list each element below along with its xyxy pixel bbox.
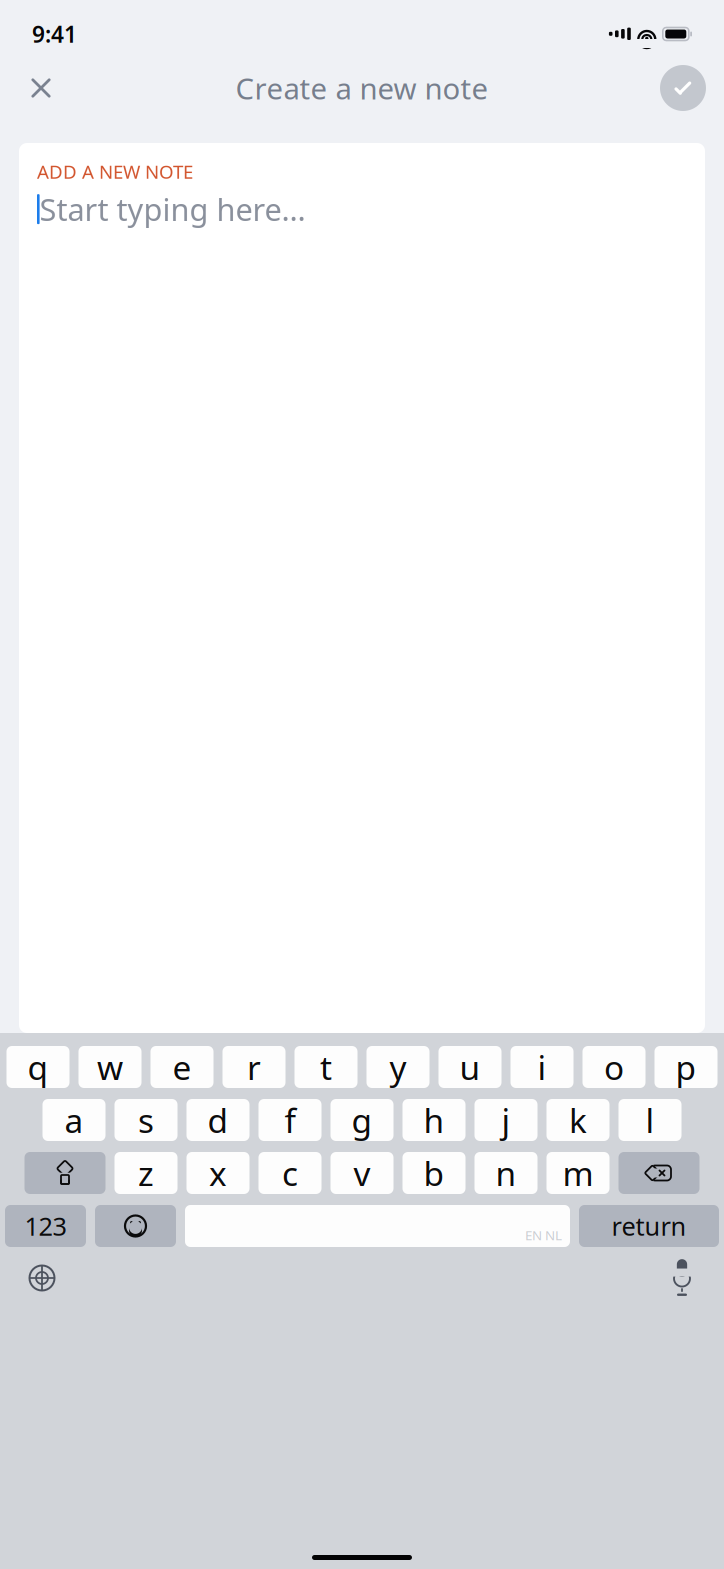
staticText: i bbox=[537, 1045, 546, 1089]
staticText: Start typing here... bbox=[40, 189, 306, 229]
staticText: EN NL bbox=[525, 1226, 562, 1244]
staticText: u bbox=[459, 1045, 480, 1089]
staticText: Create a new note bbox=[235, 68, 488, 107]
button[interactable]: w bbox=[78, 1046, 141, 1088]
staticText: z bbox=[138, 1151, 154, 1195]
button[interactable]: Delete bbox=[618, 1152, 699, 1194]
button[interactable]: c bbox=[258, 1152, 321, 1194]
staticText: ADD A NEW NOTE bbox=[37, 159, 193, 184]
staticText: d bbox=[207, 1098, 228, 1142]
button[interactable]: space bbox=[185, 1205, 570, 1247]
button[interactable]: y bbox=[366, 1046, 429, 1088]
staticText: w bbox=[97, 1045, 123, 1089]
staticText: a bbox=[64, 1098, 83, 1142]
staticText: n bbox=[495, 1151, 516, 1195]
button[interactable]: q bbox=[6, 1046, 69, 1088]
button[interactable]: z bbox=[114, 1152, 177, 1194]
button[interactable]: t bbox=[294, 1046, 357, 1088]
button[interactable]: i bbox=[510, 1046, 573, 1088]
staticText: e bbox=[172, 1045, 191, 1089]
staticText: k bbox=[569, 1098, 587, 1142]
staticText: 9:41 bbox=[32, 19, 77, 49]
staticText: x bbox=[209, 1151, 227, 1195]
staticText: y bbox=[389, 1045, 406, 1089]
button[interactable]: Emoji bbox=[95, 1205, 176, 1247]
button[interactable]: d bbox=[186, 1099, 249, 1141]
staticText: j bbox=[501, 1098, 510, 1142]
button[interactable]: g bbox=[330, 1099, 393, 1141]
button[interactable]: Close bbox=[14, 61, 68, 115]
button[interactable]: return bbox=[579, 1205, 719, 1247]
button[interactable]: Shift bbox=[24, 1152, 105, 1194]
staticText: o bbox=[604, 1045, 624, 1089]
button[interactable]: a bbox=[42, 1099, 105, 1141]
staticText: v bbox=[353, 1151, 370, 1195]
staticText: return bbox=[611, 1209, 686, 1243]
button[interactable]: f bbox=[258, 1099, 321, 1141]
staticText: m bbox=[562, 1151, 593, 1195]
button[interactable]: r bbox=[222, 1046, 285, 1088]
button[interactable]: u bbox=[438, 1046, 501, 1088]
staticText: c bbox=[282, 1151, 298, 1195]
button[interactable]: Dictate bbox=[667, 1261, 697, 1295]
button[interactable]: l bbox=[618, 1099, 681, 1141]
button[interactable]: o bbox=[582, 1046, 645, 1088]
staticText: l bbox=[645, 1098, 654, 1142]
button[interactable]: v bbox=[330, 1152, 393, 1194]
button[interactable]: p bbox=[654, 1046, 717, 1088]
staticText: g bbox=[351, 1098, 372, 1142]
button[interactable]: s bbox=[114, 1099, 177, 1141]
staticText: r bbox=[247, 1045, 261, 1089]
staticText: q bbox=[27, 1045, 48, 1089]
button[interactable]: b bbox=[402, 1152, 465, 1194]
button[interactable]: k bbox=[546, 1099, 609, 1141]
staticText: s bbox=[138, 1098, 154, 1142]
staticText: b bbox=[423, 1151, 444, 1195]
button[interactable]: 123 bbox=[5, 1205, 86, 1247]
button[interactable]: h bbox=[402, 1099, 465, 1141]
staticText: f bbox=[284, 1098, 295, 1142]
button[interactable]: m bbox=[546, 1152, 609, 1194]
button[interactable]: x bbox=[186, 1152, 249, 1194]
staticText: t bbox=[320, 1045, 332, 1089]
button[interactable]: j bbox=[474, 1099, 537, 1141]
staticText: 123 bbox=[24, 1209, 66, 1243]
staticText: h bbox=[423, 1098, 444, 1142]
button[interactable]: n bbox=[474, 1152, 537, 1194]
button[interactable]: Change keyboard bbox=[27, 1263, 57, 1293]
button[interactable]: Save note bbox=[656, 61, 710, 115]
button[interactable]: e bbox=[150, 1046, 213, 1088]
staticText: p bbox=[675, 1045, 696, 1089]
